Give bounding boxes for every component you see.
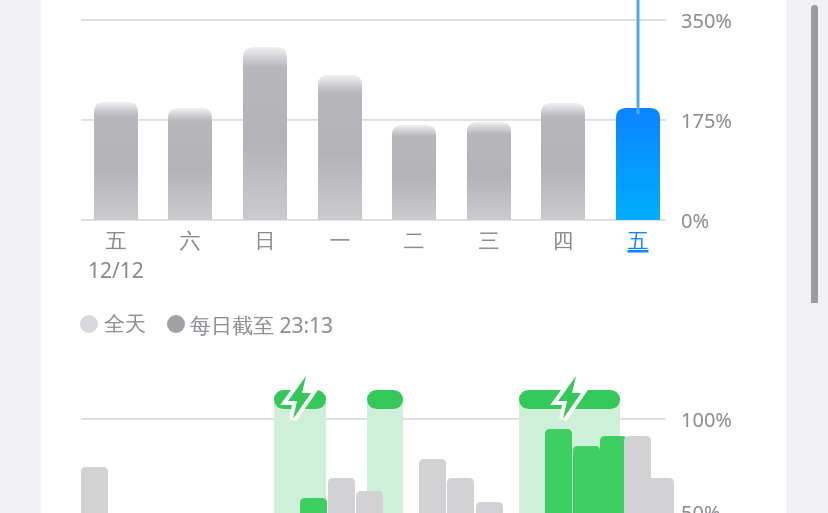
button[interactable]: Battery level and usage charts xyxy=(0,0,828,513)
